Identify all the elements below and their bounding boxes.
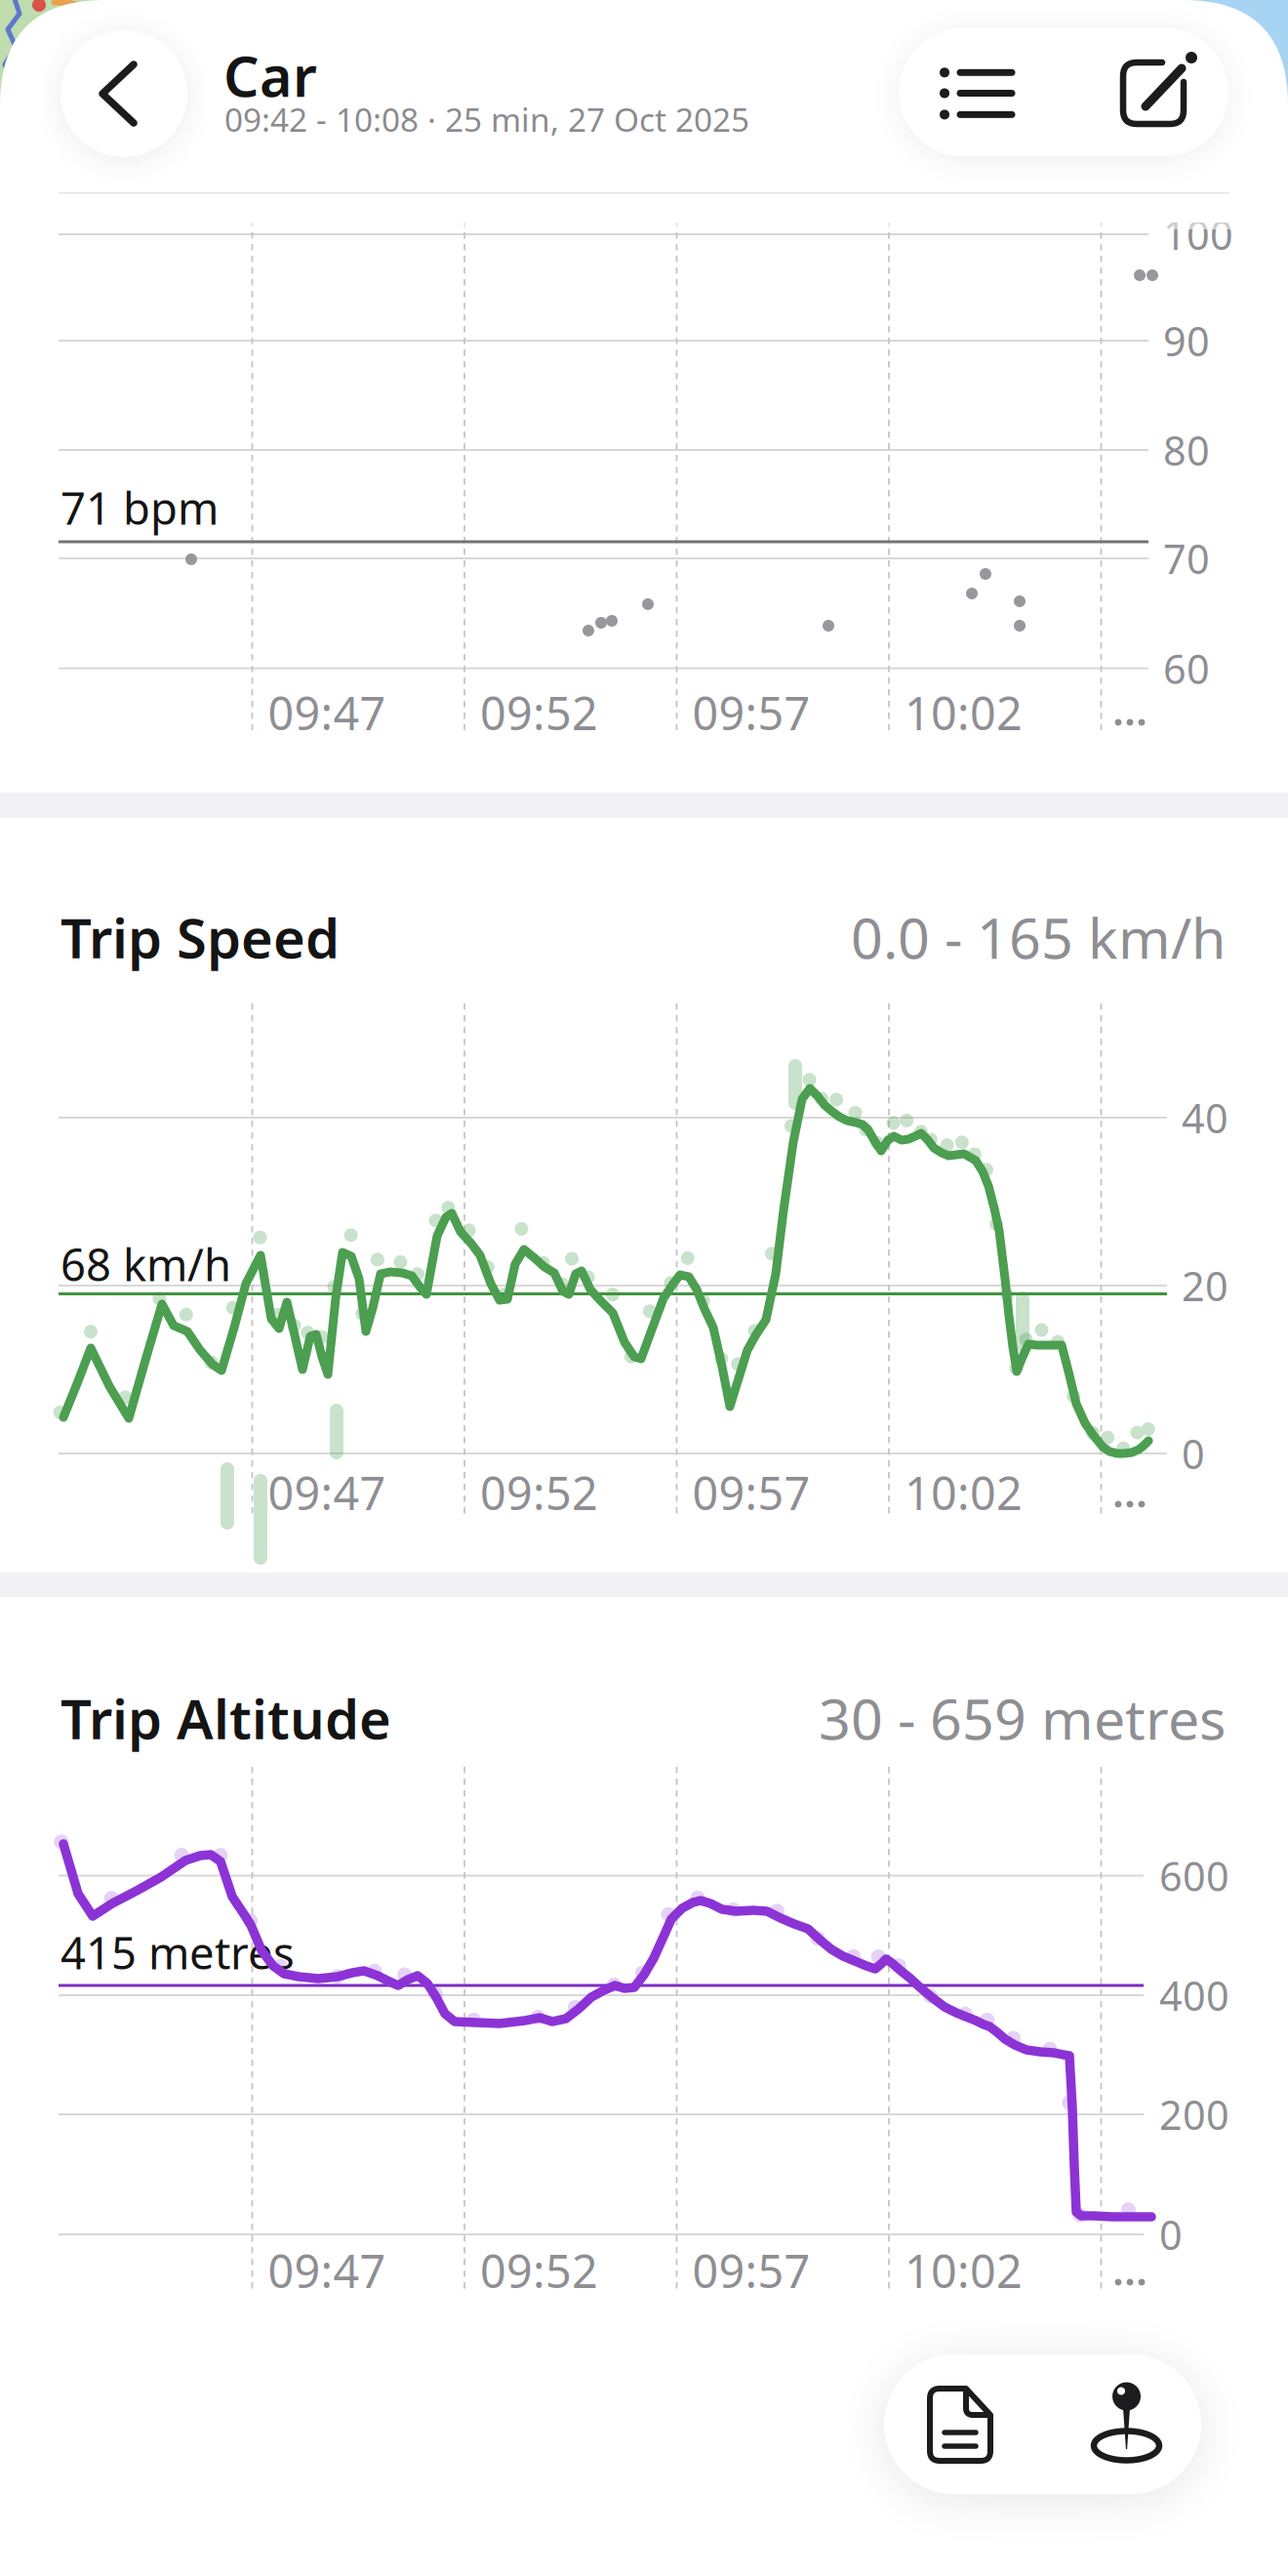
staticText: 10:02 <box>905 682 1023 743</box>
staticText: 400 <box>1159 1968 1229 2022</box>
staticText: 09:57 <box>692 2240 810 2301</box>
staticText: 90 <box>1163 314 1210 368</box>
button[interactable]: Details <box>899 28 1064 156</box>
staticText: 09:52 <box>480 682 598 743</box>
staticText: 0 <box>1182 1427 1205 1480</box>
button[interactable]: Show on map <box>1043 2354 1201 2494</box>
staticText: 10:02 <box>905 2240 1023 2301</box>
staticText: 10:02 <box>905 1462 1023 1523</box>
staticText: 09:47 <box>268 682 386 743</box>
staticText: Car <box>223 38 317 112</box>
staticText: 415 metres <box>60 1923 295 1982</box>
staticText: 30 - 659 metres <box>819 1681 1226 1755</box>
staticText: 09:47 <box>268 2240 386 2301</box>
button[interactable]: Edit <box>1064 28 1228 156</box>
staticText: 40 <box>1182 1091 1228 1145</box>
staticText: 0 <box>1159 2208 1183 2261</box>
staticText: 09:57 <box>692 682 810 743</box>
staticText: 100 <box>1163 208 1233 261</box>
button[interactable]: Back <box>60 30 187 157</box>
staticText: 600 <box>1159 1849 1229 1902</box>
staticText: 71 bpm <box>60 478 219 537</box>
staticText: 80 <box>1163 423 1210 477</box>
staticText: 200 <box>1159 2088 1229 2141</box>
staticText: 09:52 <box>480 2240 598 2301</box>
staticText: 0.0 - 165 km/h <box>851 900 1226 974</box>
staticText: 09:47 <box>268 1462 386 1523</box>
staticText: Trip Altitude <box>60 1682 391 1754</box>
staticText: 70 <box>1163 532 1210 585</box>
staticText: 09:57 <box>692 1462 810 1523</box>
staticText: 09:52 <box>480 1462 598 1523</box>
button[interactable]: Export file <box>884 2354 1043 2494</box>
staticText: 68 km/h <box>60 1235 231 1293</box>
staticText: 60 <box>1163 642 1210 695</box>
staticText: 20 <box>1182 1259 1228 1312</box>
staticText: 09:42 - 10:08 · 25 min, 27 Oct 2025 <box>224 98 749 141</box>
staticText: Trip Speed <box>60 901 340 973</box>
